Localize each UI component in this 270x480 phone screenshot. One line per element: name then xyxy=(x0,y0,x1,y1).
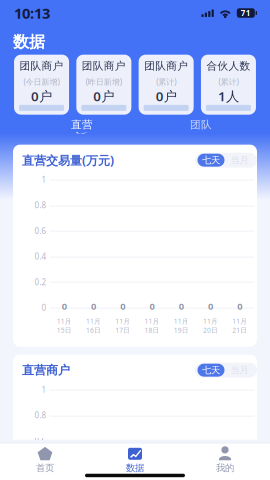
staticText: 11月 xyxy=(115,317,130,326)
button[interactable]: 团队商户 xyxy=(76,55,131,115)
button[interactable]: 七天 xyxy=(197,364,224,377)
staticText: 0 xyxy=(120,300,125,312)
button[interactable]: 直营 xyxy=(61,116,103,138)
staticText: 0 xyxy=(41,302,46,313)
button[interactable]: 当月 xyxy=(224,364,254,377)
staticText: 20日 xyxy=(203,326,218,335)
staticText: 17日 xyxy=(115,326,130,335)
staticText: 团队商户 xyxy=(19,59,63,72)
staticText: 10:13 xyxy=(14,3,50,23)
staticText: 数据 xyxy=(126,462,144,474)
staticText: 团队商户 xyxy=(144,59,188,72)
button[interactable]: 首页 xyxy=(0,442,90,474)
button[interactable]: 七天 xyxy=(197,154,224,167)
staticText: 19日 xyxy=(174,326,189,335)
staticText: 直营 xyxy=(71,118,93,131)
button[interactable]: 合伙人数 xyxy=(201,55,256,115)
staticText: 0.6 xyxy=(34,225,46,236)
staticText: 数据 xyxy=(13,32,45,52)
staticText: 11月 xyxy=(144,317,159,326)
staticText: 1人 xyxy=(218,87,239,105)
staticText: 当月 xyxy=(230,364,248,376)
staticText: 0.2 xyxy=(34,277,46,287)
staticText: 0 xyxy=(208,300,213,312)
staticText: 11月 xyxy=(174,317,189,326)
staticText: 七天 xyxy=(202,154,220,166)
staticText: 1 xyxy=(41,174,46,185)
staticText: 0户 xyxy=(31,87,52,105)
staticText: 11月 xyxy=(57,317,72,326)
staticText: 16日 xyxy=(86,326,101,335)
staticText: (累计) xyxy=(156,76,176,87)
staticText: 0户 xyxy=(156,87,177,105)
staticText: 71 xyxy=(241,8,251,18)
staticText: 11月 xyxy=(203,317,218,326)
staticText: 15日 xyxy=(57,326,72,335)
staticText: 0.4 xyxy=(34,251,46,262)
staticText: 七天 xyxy=(202,364,220,376)
staticText: 直营交易量(万元) xyxy=(22,152,114,168)
staticText: 0.4 xyxy=(34,461,46,472)
staticText: 团队 xyxy=(190,118,212,131)
staticText: 0 xyxy=(179,300,184,312)
button[interactable]: 团队商户 xyxy=(139,55,194,115)
staticText: 0 xyxy=(149,300,154,312)
staticText: 0.8 xyxy=(34,200,46,210)
staticText: 直营商户 xyxy=(22,363,70,377)
button[interactable]: 团队 xyxy=(180,116,222,138)
staticText: (累计) xyxy=(218,76,238,87)
staticText: 合伙人数 xyxy=(206,59,250,72)
button[interactable]: 我的 xyxy=(180,442,270,474)
button[interactable]: 团队商户 xyxy=(14,55,69,115)
staticText: 0 xyxy=(237,300,242,312)
staticText: 我的 xyxy=(216,462,234,474)
staticText: 当月 xyxy=(230,154,248,166)
staticText: (昨日新增) xyxy=(86,76,122,87)
staticText: 0.8 xyxy=(34,410,46,420)
staticText: 18日 xyxy=(144,326,159,335)
staticText: 21日 xyxy=(232,326,247,335)
staticText: 1 xyxy=(41,384,46,395)
staticText: 0.6 xyxy=(34,435,46,446)
staticText: 11月 xyxy=(86,317,101,326)
staticText: 11月 xyxy=(232,317,247,326)
staticText: 0 xyxy=(91,300,96,312)
staticText: 0 xyxy=(62,300,67,312)
button[interactable]: 数据 xyxy=(90,442,180,474)
staticText: 首页 xyxy=(36,462,54,474)
staticText: 0户 xyxy=(93,87,114,105)
staticText: 团队商户 xyxy=(82,59,126,72)
staticText: (今日新增) xyxy=(23,76,59,87)
button[interactable]: 当月 xyxy=(224,154,254,167)
